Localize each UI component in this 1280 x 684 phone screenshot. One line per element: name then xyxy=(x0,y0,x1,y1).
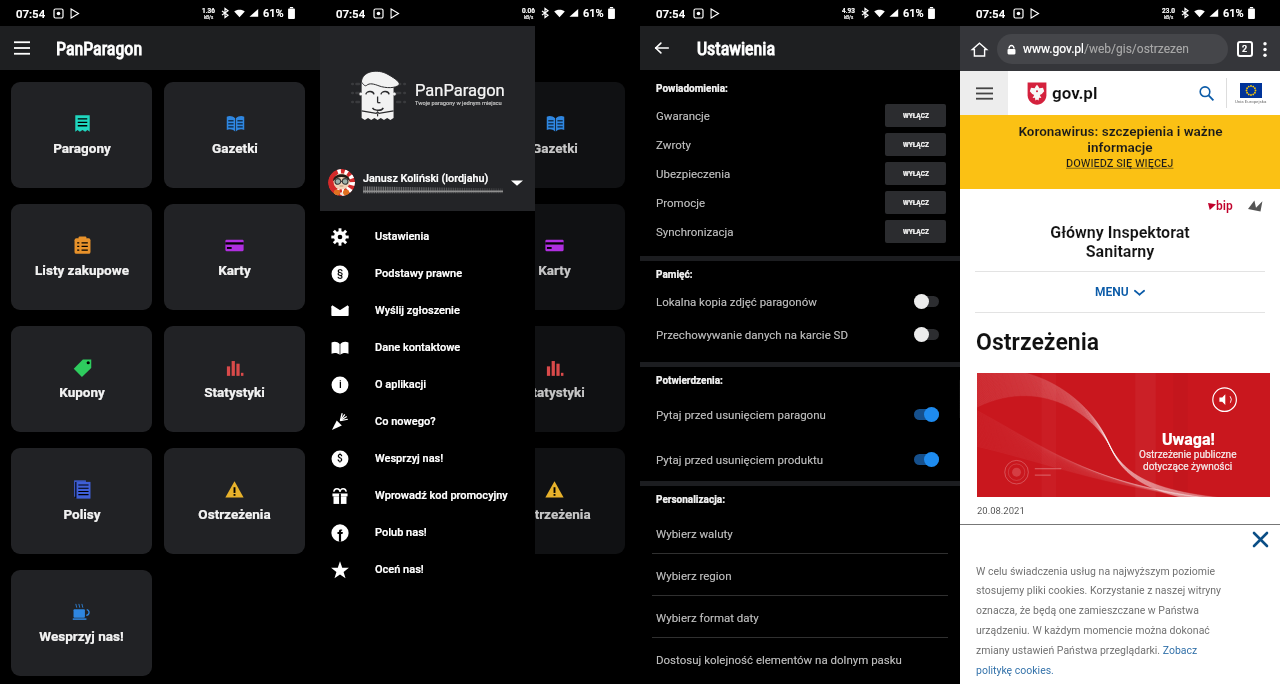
staticText: Kupony xyxy=(59,384,105,400)
button[interactable]: Pytaj przed usunięciem produktu xyxy=(640,443,960,476)
button[interactable]: Zwroty xyxy=(640,130,960,159)
staticText: WYŁĄCZ xyxy=(903,170,929,178)
staticText: 61% xyxy=(263,7,284,20)
button[interactable]: Home xyxy=(966,36,992,62)
staticText: WYŁĄCZ xyxy=(903,112,929,120)
button[interactable]: § xyxy=(320,255,535,292)
staticText: kB/s xyxy=(524,15,534,20)
staticText: Polub nas! xyxy=(375,526,427,539)
button[interactable]: Statystyki xyxy=(164,326,305,432)
button[interactable]: Dostosuj kolejność elementów na dolnym p… xyxy=(640,638,960,680)
staticText: Pamięć: xyxy=(656,269,693,281)
staticText: Personalizacja: xyxy=(656,494,725,506)
button[interactable]: Listy zakupowe xyxy=(11,204,152,310)
staticText: Potwierdzenia: xyxy=(656,375,723,387)
button[interactable]: WYŁĄCZ xyxy=(885,220,946,243)
button[interactable]: Co nowego? xyxy=(320,403,535,440)
staticText: Ostrzeżenia xyxy=(518,506,591,522)
button[interactable]: Wybierz region xyxy=(640,554,960,596)
staticText: Dane kontaktowe xyxy=(375,341,461,354)
button[interactable]: Polisy xyxy=(11,448,152,554)
staticText: Uwaga! xyxy=(1162,430,1215,449)
button[interactable]: Gazetki xyxy=(164,82,305,188)
button[interactable]: WYŁĄCZ xyxy=(885,104,946,127)
button[interactable]: Wyślij zgłoszenie xyxy=(320,292,535,329)
staticText: /web/gis/ostrzezen xyxy=(1084,42,1189,56)
button[interactable]: WYŁĄCZ xyxy=(885,162,946,185)
staticText: 20.08.2021 xyxy=(977,505,1025,516)
staticText: 0.06 xyxy=(522,7,535,15)
button[interactable]: Dane kontaktowe xyxy=(320,329,535,366)
staticText: 4.93 xyxy=(842,7,855,15)
staticText: Oceń nas! xyxy=(375,563,424,576)
staticText: Dostosuj kolejność elementów na dolnym p… xyxy=(656,653,902,666)
staticText: Twoje paragony w jednym miejscu xyxy=(415,100,502,107)
staticText: Statystyki xyxy=(204,384,265,400)
button[interactable]: Close xyxy=(1249,528,1271,550)
staticText: gov.pl xyxy=(1052,83,1098,103)
staticText: bip xyxy=(1216,199,1233,213)
staticText: WYŁĄCZ xyxy=(903,228,929,236)
button[interactable]: Polub nas! xyxy=(320,514,535,551)
button[interactable]: Back xyxy=(640,26,684,70)
staticText: O aplikacji xyxy=(375,378,427,391)
staticText: Wprowadź kod promocyjny xyxy=(375,489,508,502)
button[interactable]: $ xyxy=(320,440,535,477)
staticText: Ustawienia xyxy=(697,38,776,59)
button[interactable]: Synchronizacja xyxy=(640,217,960,246)
button[interactable]: MENU xyxy=(960,272,1280,312)
button[interactable]: WYŁĄCZ xyxy=(885,133,946,156)
button[interactable]: Ubezpieczenia xyxy=(640,159,960,188)
staticText: kB/s xyxy=(844,15,854,20)
staticText: Powiadomienia: xyxy=(656,83,728,95)
staticText: kB/s xyxy=(1164,15,1174,20)
button[interactable]: Karty xyxy=(164,204,305,310)
button[interactable]: Gwarancje xyxy=(640,101,960,130)
staticText: Ostrzeżenie publiczne xyxy=(1139,449,1237,461)
staticText: Unia Europejska xyxy=(1235,99,1267,104)
staticText: 61% xyxy=(583,7,604,20)
button[interactable]: i xyxy=(320,366,535,403)
staticText: 1.36 xyxy=(202,7,215,15)
button[interactable]: Oceń nas! xyxy=(320,551,535,588)
button[interactable]: Janusz Koliński (lordjahu) xyxy=(328,169,527,196)
staticText: 07:54 xyxy=(656,7,686,20)
staticText: PanParagon xyxy=(415,81,505,100)
staticText: Paragony xyxy=(53,140,111,156)
staticText: § xyxy=(337,268,344,280)
staticText: Promocje xyxy=(656,196,706,209)
staticText: Wyślij zgłoszenie xyxy=(375,304,460,317)
staticText: Zwroty xyxy=(656,138,691,151)
staticText: Gazetki xyxy=(532,140,578,156)
staticText: Koronawirus: szczepienia i ważne xyxy=(1018,123,1223,139)
staticText: Wesprzyj nas! xyxy=(39,628,124,644)
button[interactable]: Ostrzeżenia xyxy=(164,448,305,554)
button[interactable]: Kupony xyxy=(11,326,152,432)
staticText: Statystyki xyxy=(524,384,585,400)
button[interactable]: Wprowadź kod promocyjny xyxy=(320,477,535,514)
button[interactable]: Paragony xyxy=(11,82,152,188)
button[interactable]: Lokalna kopia zdjęć paragonów xyxy=(640,285,960,318)
button[interactable]: Ustawienia xyxy=(320,218,535,255)
button[interactable]: Wybierz waluty xyxy=(640,512,960,554)
button[interactable]: Menu xyxy=(960,71,1008,115)
staticText: Przechowywanie danych na karcie SD xyxy=(656,328,848,341)
staticText: 61% xyxy=(1223,7,1244,20)
button[interactable]: www.gov.pl xyxy=(997,34,1228,64)
staticText: Ostrzeżenia xyxy=(976,329,1100,356)
button[interactable]: Open navigation drawer xyxy=(0,26,44,70)
staticText: Ustawienia xyxy=(375,230,430,243)
button[interactable]: WYŁĄCZ xyxy=(885,191,946,214)
button[interactable]: Wybierz format daty xyxy=(640,596,960,638)
staticText: Ostrzeżenia xyxy=(198,506,271,522)
staticText: Janusz Koliński (lordjahu) xyxy=(363,172,489,185)
staticText: 23.0 xyxy=(1162,7,1175,15)
button[interactable]: Tabs xyxy=(1237,41,1253,57)
button[interactable]: More options xyxy=(1253,37,1277,61)
button[interactable]: Wesprzyj nas! xyxy=(11,570,152,676)
button[interactable]: Pytaj przed usunięciem paragonu xyxy=(640,398,960,431)
staticText: W celu świadczenia usług na najwyższym p… xyxy=(976,565,1235,677)
button[interactable]: Przechowywanie danych na karcie SD xyxy=(640,318,960,351)
button[interactable]: Promocje xyxy=(640,188,960,217)
button[interactable]: Search xyxy=(1190,77,1222,109)
